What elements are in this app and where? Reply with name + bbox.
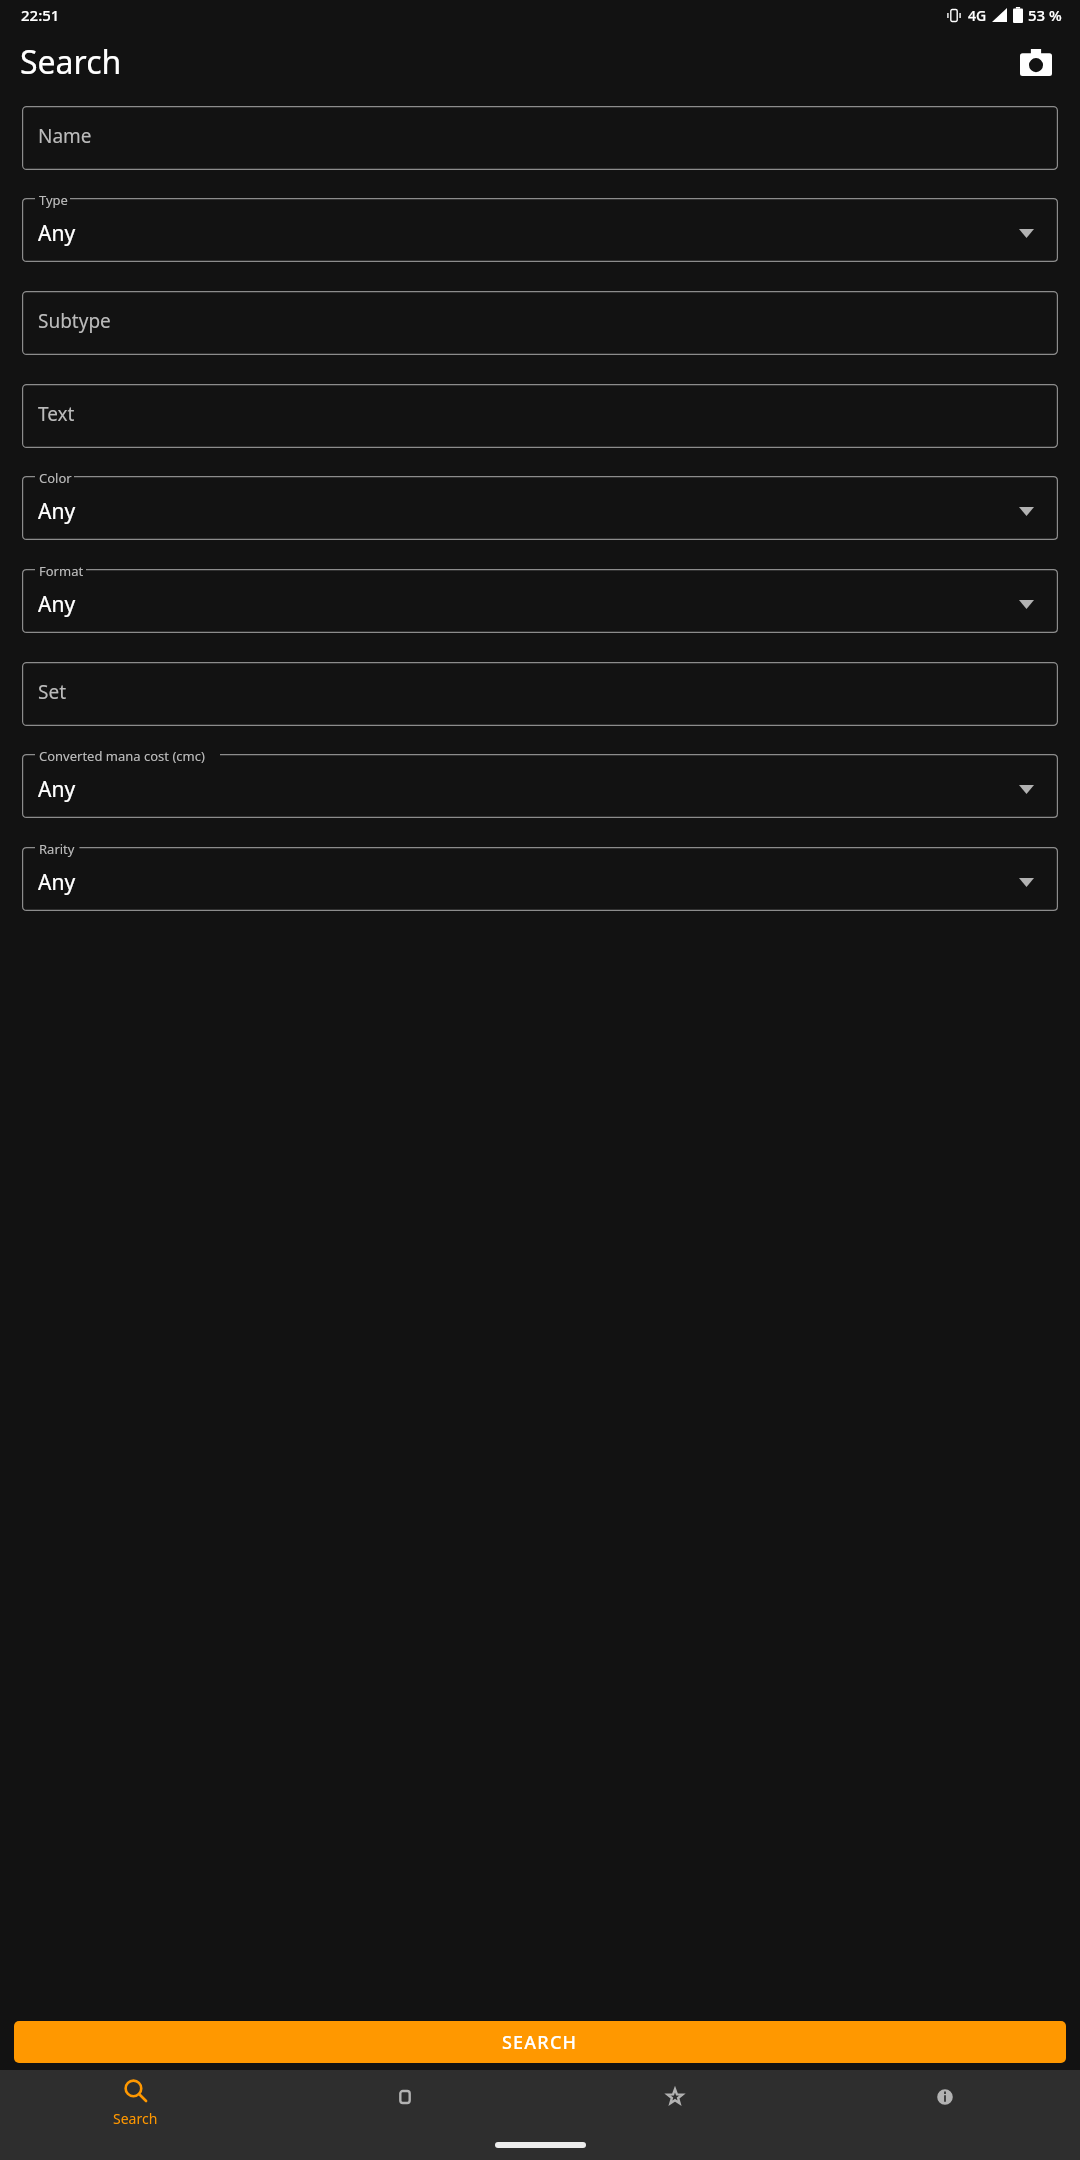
staticText: Rarity [39, 840, 75, 858]
button[interactable]: Type [22, 198, 1058, 262]
button[interactable]: Rarity [22, 847, 1058, 911]
button[interactable]: Favorites [540, 2070, 810, 2138]
button[interactable]: Subtype [22, 291, 1058, 355]
staticText: 53 % [1028, 5, 1062, 25]
button[interactable]: Set [22, 662, 1058, 726]
staticText: Any [38, 775, 76, 804]
staticText: Any [38, 497, 76, 526]
staticText: Search [113, 2109, 158, 2128]
staticText: Converted mana cost (cmc) [39, 747, 205, 765]
button[interactable]: Color [22, 476, 1058, 540]
button[interactable]: Search [0, 2070, 270, 2138]
button[interactable]: Converted mana cost (cmc) [22, 754, 1058, 818]
button[interactable]: Card [270, 2070, 540, 2138]
staticText: Text [38, 401, 75, 427]
staticText: Color [39, 469, 72, 487]
staticText: Any [38, 868, 76, 897]
staticText: SEARCH [502, 2030, 578, 2055]
button[interactable]: Info [810, 2070, 1080, 2138]
staticText: Type [39, 191, 68, 209]
button[interactable]: Text [22, 384, 1058, 448]
staticText: Subtype [38, 308, 111, 334]
button[interactable]: Name [22, 106, 1058, 170]
staticText: Any [38, 219, 76, 248]
staticText: 22:51 [21, 5, 60, 25]
staticText: 4G [968, 6, 987, 25]
staticText: Format [39, 562, 84, 580]
button[interactable]: SEARCH [14, 2021, 1066, 2063]
button[interactable]: Format [22, 569, 1058, 633]
staticText: Set [38, 679, 67, 705]
staticText: Any [38, 590, 76, 619]
staticText: Search [20, 40, 122, 84]
staticText: Name [38, 123, 92, 149]
button[interactable]: Scan card with camera [1012, 38, 1060, 86]
